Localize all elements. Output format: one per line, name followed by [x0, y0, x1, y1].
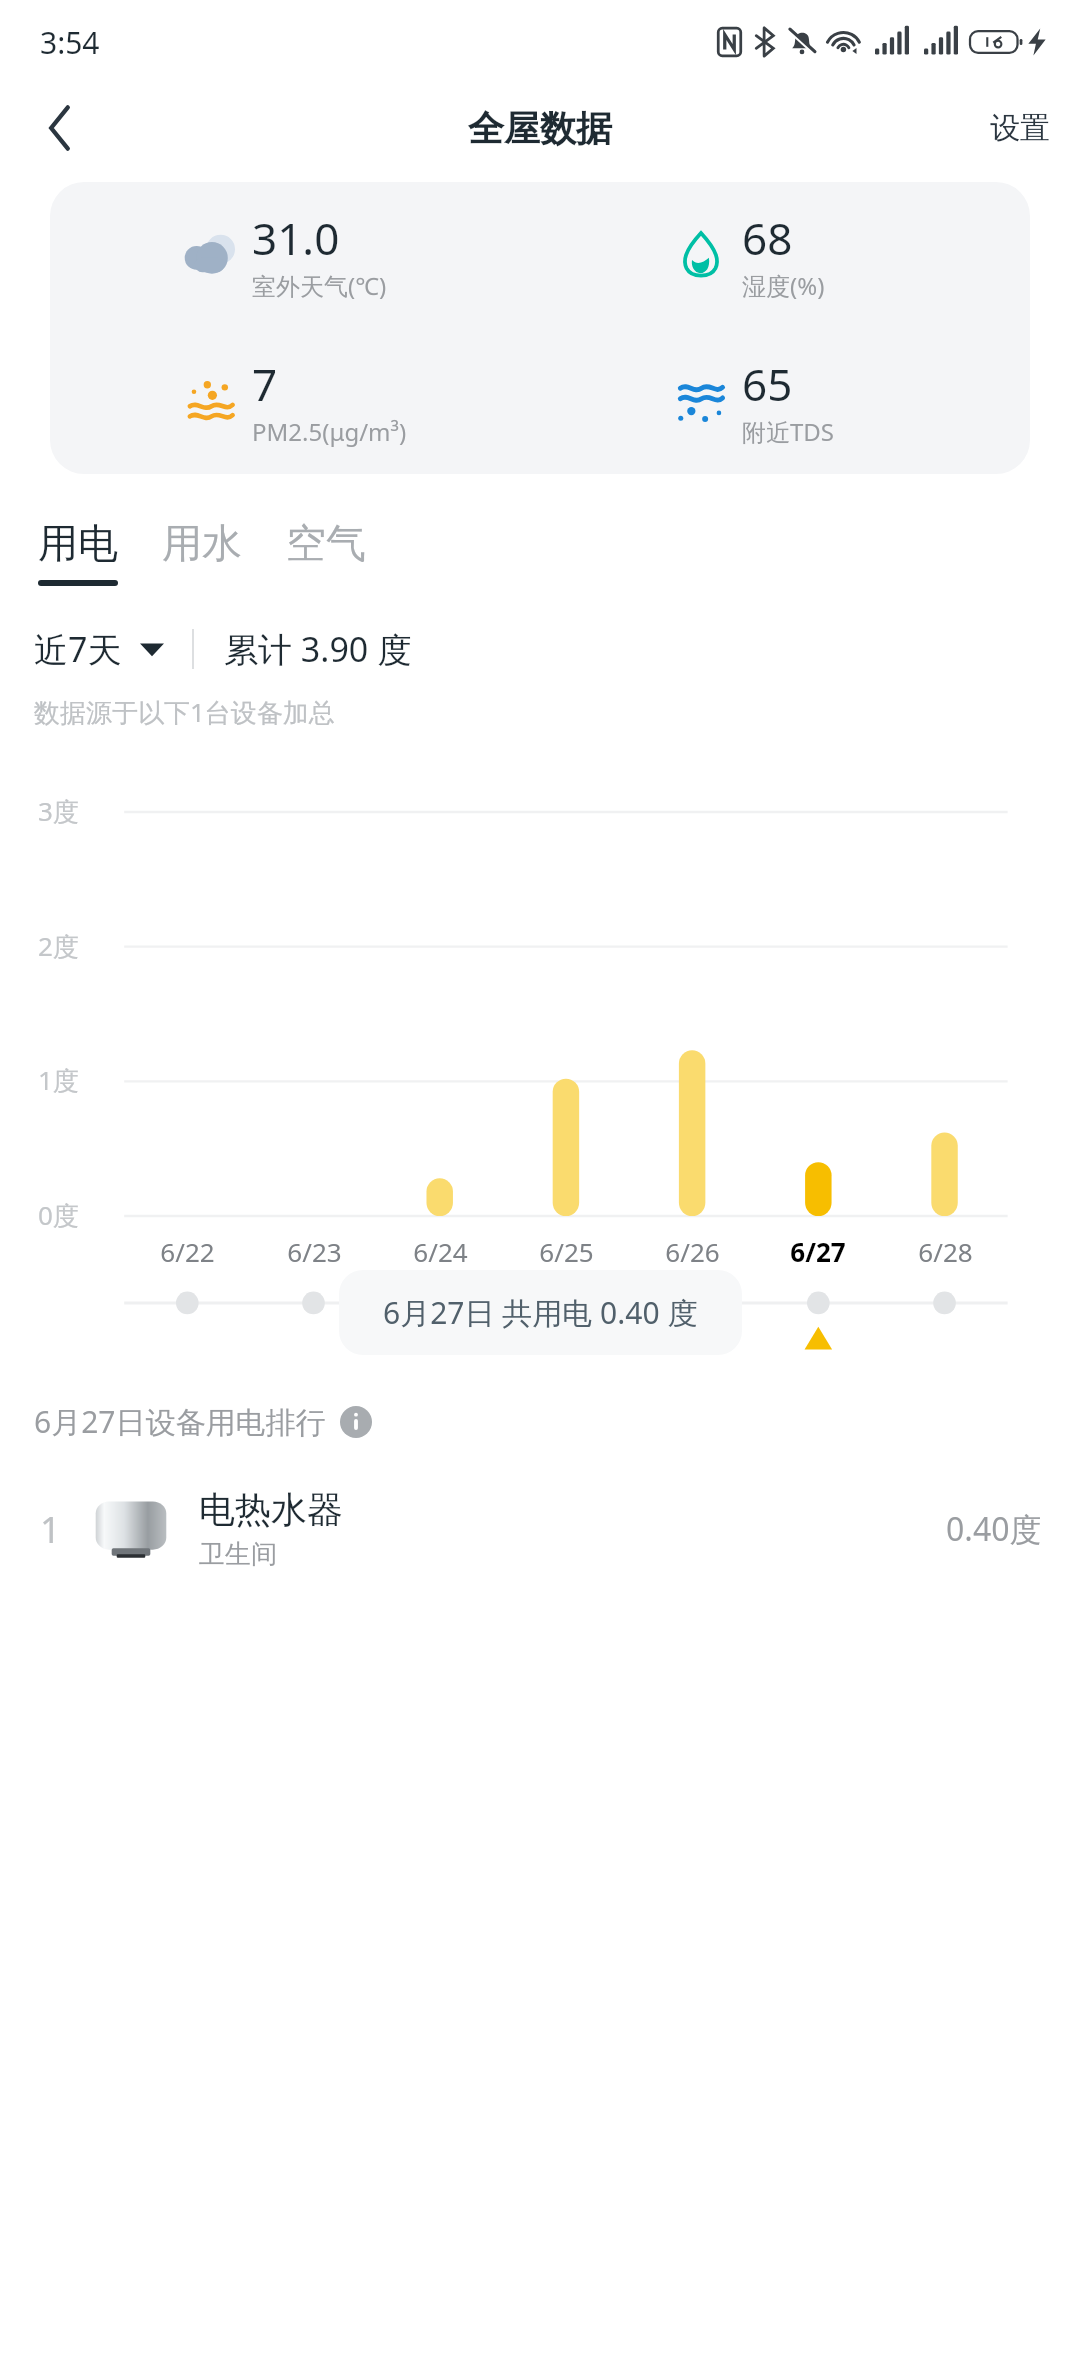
- button[interactable]: 6月27日 共用电 0.40 度: [339, 1270, 742, 1355]
- button[interactable]: 近7天: [34, 620, 164, 678]
- staticText: PM2.5(μg/m³): [252, 415, 407, 448]
- staticText: 数据源于以下1台设备加总: [34, 694, 335, 730]
- staticText: 附近TDS: [742, 415, 835, 448]
- staticText: 6月27日 共用电 0.40 度: [383, 1292, 698, 1333]
- staticText: 空气: [286, 518, 366, 568]
- staticText: 卫生间: [199, 1538, 277, 1571]
- button[interactable]: 用电: [30, 518, 126, 586]
- button[interactable]: Back: [16, 84, 104, 172]
- button[interactable]: 空气: [278, 518, 374, 586]
- staticText: 0度: [38, 1197, 79, 1233]
- staticText: 31.0: [252, 208, 340, 268]
- staticText: 6月27日设备用电排行: [34, 1401, 326, 1442]
- staticText: 1度: [38, 1062, 79, 1098]
- staticText: 1: [40, 1505, 61, 1554]
- staticText: 6/26: [665, 1234, 720, 1269]
- staticText: 6/27: [790, 1234, 846, 1269]
- button[interactable]: 设置: [960, 91, 1080, 165]
- staticText: 6/22: [160, 1234, 215, 1269]
- staticText: 3:54: [40, 22, 100, 63]
- staticText: 3度: [38, 793, 79, 829]
- staticText: 7: [252, 354, 278, 414]
- staticText: 0.40度: [946, 1507, 1042, 1551]
- other: Info: [340, 1406, 372, 1438]
- staticText: 6/25: [539, 1234, 594, 1269]
- staticText: 用水: [162, 518, 242, 568]
- staticText: 2度: [38, 928, 79, 964]
- staticText: 全屋数据: [468, 106, 612, 151]
- staticText: 6/24: [413, 1234, 468, 1269]
- button[interactable]: 用水: [154, 518, 250, 586]
- staticText: 65: [742, 354, 793, 414]
- button[interactable]: 1: [0, 1464, 1080, 1594]
- button[interactable]: 31.0: [50, 182, 1030, 474]
- staticText: 累计 3.90 度: [224, 626, 412, 672]
- staticText: 近7天: [34, 626, 122, 672]
- staticText: 湿度(%): [742, 269, 825, 302]
- staticText: 用电: [38, 518, 118, 568]
- staticText: 68: [742, 208, 793, 268]
- staticText: 设置: [990, 109, 1050, 147]
- staticText: 6/23: [287, 1234, 342, 1269]
- button[interactable]: 6月27日设备用电排行: [0, 1397, 1080, 1446]
- staticText: 电热水器: [199, 1487, 343, 1532]
- staticText: 室外天气(℃): [252, 269, 387, 302]
- staticText: 6/28: [918, 1234, 973, 1269]
